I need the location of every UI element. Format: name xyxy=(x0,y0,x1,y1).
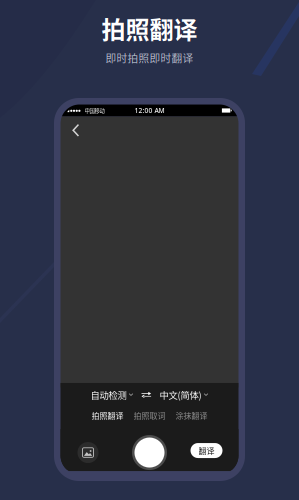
button[interactable]: 拍照 xyxy=(132,435,167,470)
staticText: 中国移动 xyxy=(84,107,104,114)
button[interactable]: 返回 xyxy=(66,120,86,140)
staticText: 翻译 xyxy=(198,445,214,456)
staticText: 拍照翻译 xyxy=(101,11,197,46)
staticText: 拍照翻译 xyxy=(91,409,123,421)
button[interactable]: 相册 xyxy=(77,442,98,463)
staticText: 即时拍照即时翻译 xyxy=(105,50,193,65)
staticText: 12:00 AM xyxy=(134,106,164,115)
staticText: 拍照取词 xyxy=(133,409,165,421)
button[interactable]: 涂抹翻译 xyxy=(175,409,207,421)
button[interactable]: 自动检测 xyxy=(90,388,133,401)
staticText: 中文(简体) xyxy=(159,388,201,401)
button[interactable]: 翻译 xyxy=(190,443,222,458)
staticText: 自动检测 xyxy=(90,388,126,401)
button[interactable]: 交换语言 xyxy=(133,391,159,399)
button[interactable]: 中文(简体) xyxy=(159,388,208,401)
staticText: 涂抹翻译 xyxy=(175,409,207,421)
button[interactable]: 拍照取词 xyxy=(133,409,165,421)
button[interactable]: 拍照翻译 xyxy=(91,409,123,421)
